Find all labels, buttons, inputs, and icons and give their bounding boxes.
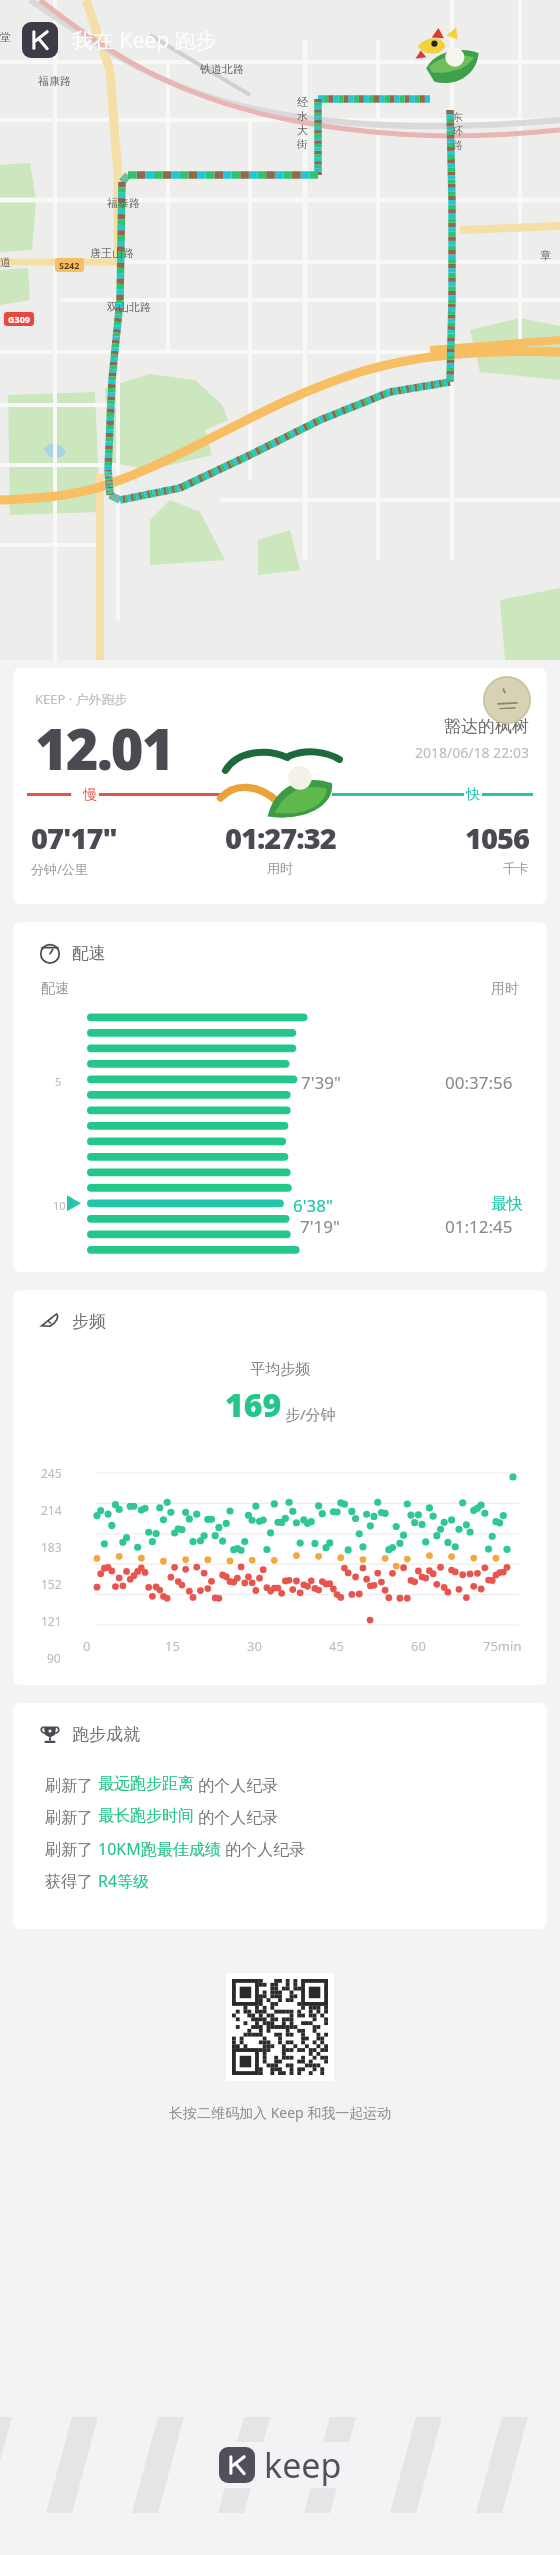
- staticText: 分钟/公里: [31, 860, 88, 878]
- staticText: 跑步成就: [72, 1724, 140, 1745]
- staticText: 豁达的枫树: [444, 716, 529, 737]
- staticText: 01:12:45: [445, 1215, 513, 1238]
- staticText: 配速: [72, 943, 106, 964]
- staticText: 我在 Keep 跑步: [72, 26, 217, 55]
- staticText: 2018/06/18 22:03: [415, 743, 529, 762]
- button[interactable]: 步频: [39, 1310, 547, 1332]
- button[interactable]: 跑步成就: [39, 1723, 547, 1745]
- staticText: 10KM跑最佳成绩: [98, 1838, 221, 1860]
- staticText: 75min: [483, 1637, 522, 1655]
- staticText: 30: [247, 1637, 262, 1655]
- staticText: 环: [452, 124, 463, 138]
- staticText: 1056: [465, 818, 529, 857]
- staticText: 东: [452, 110, 463, 124]
- staticText: 的个人纪录: [194, 1774, 279, 1796]
- staticText: 刷新了: [45, 1838, 98, 1860]
- staticText: 01:27:32: [225, 818, 336, 857]
- other: Keep: [22, 22, 58, 58]
- staticText: 0: [83, 1637, 91, 1655]
- staticText: 183: [41, 1539, 62, 1555]
- staticText: 道: [0, 255, 11, 269]
- staticText: 水: [297, 109, 308, 123]
- staticText: 最快: [491, 1194, 523, 1214]
- staticText: 堂: [0, 30, 11, 44]
- staticText: 的个人纪录: [221, 1838, 306, 1860]
- staticText: 路: [452, 138, 463, 152]
- staticText: S242: [59, 259, 80, 271]
- staticText: 福康路: [38, 74, 71, 88]
- staticText: 刷新了: [45, 1806, 98, 1828]
- staticText: 00:37:56: [445, 1071, 513, 1094]
- staticText: 245: [41, 1465, 62, 1481]
- button[interactable]: QR code: [232, 1979, 328, 2075]
- staticText: 刷新了: [45, 1774, 98, 1796]
- staticText: 12.01: [35, 710, 173, 786]
- staticText: 福泰路: [107, 196, 140, 210]
- staticText: 214: [41, 1502, 62, 1518]
- staticText: 的个人纪录: [194, 1806, 279, 1828]
- staticText: 45: [329, 1637, 344, 1655]
- staticText: 用时: [267, 860, 293, 876]
- button[interactable]: 配速: [39, 942, 547, 964]
- staticText: 长按二维码加入 Keep 和我一起运动: [169, 2103, 392, 2122]
- staticText: 千卡: [503, 860, 529, 876]
- staticText: 获得了: [45, 1870, 98, 1892]
- staticText: 经: [297, 95, 308, 109]
- staticText: 5: [55, 1074, 62, 1089]
- staticText: 121: [41, 1613, 62, 1629]
- staticText: 街: [297, 137, 308, 151]
- staticText: 最长跑步时间: [98, 1806, 194, 1826]
- staticText: G309: [8, 313, 30, 325]
- staticText: 配速: [41, 980, 69, 998]
- staticText: 快: [466, 786, 480, 802]
- staticText: 平均步频: [250, 1360, 310, 1379]
- staticText: R4等级: [98, 1870, 150, 1892]
- staticText: 铁道北路: [200, 62, 244, 76]
- staticText: KEEP · 户外跑步: [35, 690, 128, 708]
- staticText: 慢: [83, 786, 97, 802]
- staticText: 用时: [491, 980, 519, 998]
- staticText: 07'17": [31, 818, 117, 857]
- staticText: 60: [411, 1637, 426, 1655]
- staticText: 7'39": [301, 1071, 341, 1094]
- other: Keep logo: [219, 2447, 255, 2483]
- staticText: 152: [41, 1576, 62, 1592]
- button[interactable]: Keep: [22, 22, 217, 58]
- staticText: 章: [540, 248, 551, 262]
- staticText: 7'19": [300, 1215, 340, 1238]
- staticText: 最远跑步距离: [98, 1774, 194, 1794]
- staticText: 步/分钟: [285, 1404, 336, 1424]
- staticText: 15: [165, 1637, 180, 1655]
- staticText: 90: [47, 1650, 61, 1666]
- staticText: 步频: [72, 1311, 106, 1332]
- staticText: 6'38": [293, 1194, 333, 1217]
- staticText: 双山北路: [107, 300, 151, 314]
- staticText: 169: [225, 1383, 282, 1427]
- staticText: 大: [297, 123, 308, 137]
- staticText: keep: [264, 2442, 342, 2488]
- button[interactable]: Keep logo: [219, 2442, 342, 2488]
- staticText: 10: [53, 1198, 66, 1213]
- staticText: 唐王山路: [90, 246, 134, 260]
